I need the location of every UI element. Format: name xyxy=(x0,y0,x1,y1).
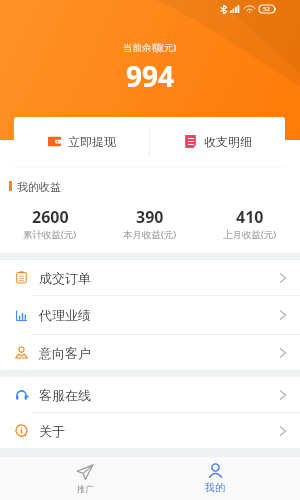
staticText: 我的收益 xyxy=(17,180,61,192)
staticText: 推广 xyxy=(77,484,94,495)
button[interactable]: 代理业绩 xyxy=(0,296,300,334)
other: 明细 xyxy=(184,135,197,148)
staticText: 2600 xyxy=(32,206,69,228)
staticText: 意向客户 xyxy=(39,345,91,361)
button[interactable]: 明细 xyxy=(150,117,285,166)
staticText: 成交订单 xyxy=(39,270,91,286)
staticText: 关于 xyxy=(39,423,65,439)
staticText: 本月收益(元) xyxy=(123,228,177,241)
staticText: 客服在线 xyxy=(39,387,91,403)
staticText: 收支明细 xyxy=(204,134,252,149)
other: 钱包 xyxy=(48,135,61,148)
button[interactable]: 意向客户 xyxy=(0,335,300,370)
staticText: 上月收益(元) xyxy=(223,228,277,241)
other: 我的 xyxy=(208,463,223,478)
button[interactable]: 推广 xyxy=(20,457,150,500)
staticText: 410 xyxy=(236,206,264,228)
staticText: 52 xyxy=(263,5,270,13)
other: 推广 xyxy=(76,463,94,481)
button[interactable]: 我的 xyxy=(150,457,280,500)
button[interactable]: 客服在线 xyxy=(0,377,300,412)
staticText: 代理业绩 xyxy=(39,307,91,323)
staticText: 当前余额(元) xyxy=(123,41,177,54)
staticText: 994 xyxy=(126,57,175,95)
staticText: 累计收益(元) xyxy=(23,228,77,241)
staticText: 立即提现 xyxy=(68,134,116,149)
staticText: 我的 xyxy=(205,481,225,494)
staticText: 390 xyxy=(136,206,164,228)
button[interactable]: 成交订单 xyxy=(0,260,300,295)
button[interactable]: 钱包 xyxy=(14,117,149,166)
button[interactable]: 关于 xyxy=(0,413,300,448)
